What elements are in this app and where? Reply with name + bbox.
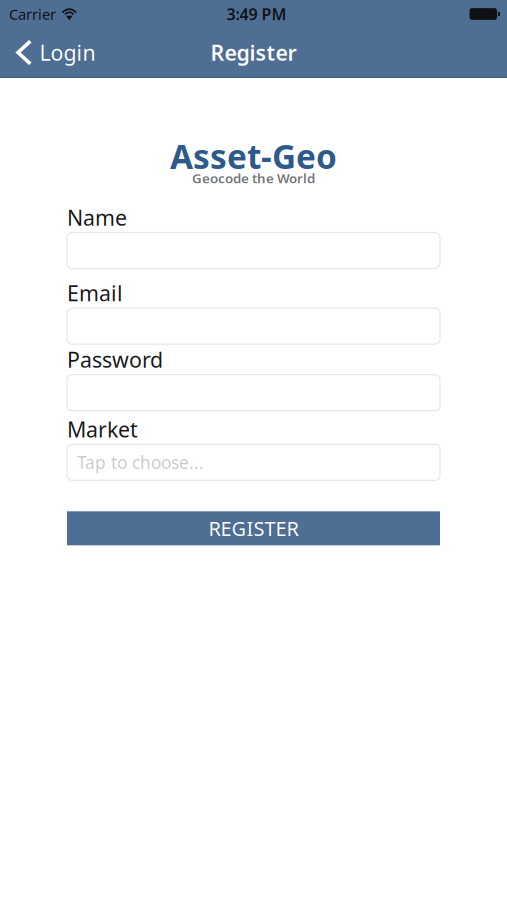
staticText: Geocode the World bbox=[192, 169, 315, 187]
staticText: Password bbox=[67, 345, 163, 374]
button[interactable] bbox=[67, 232, 440, 268]
staticText: Name bbox=[67, 203, 127, 231]
button[interactable]: Login bbox=[0, 28, 108, 77]
staticText: 3:49 PM bbox=[226, 3, 286, 25]
staticText: Market bbox=[67, 415, 138, 443]
staticText: REGISTER bbox=[208, 515, 298, 542]
staticText: Email bbox=[67, 279, 123, 307]
button[interactable]: Tap to choose... bbox=[67, 444, 440, 480]
staticText: Tap to choose... bbox=[77, 451, 204, 474]
button[interactable] bbox=[67, 308, 440, 344]
staticText: Carrier bbox=[9, 4, 56, 24]
staticText: Register bbox=[210, 38, 296, 67]
staticText: Asset-Geo bbox=[170, 134, 337, 178]
staticText: Login bbox=[40, 38, 96, 67]
button[interactable] bbox=[67, 375, 440, 411]
button[interactable]: REGISTER bbox=[67, 511, 440, 545]
